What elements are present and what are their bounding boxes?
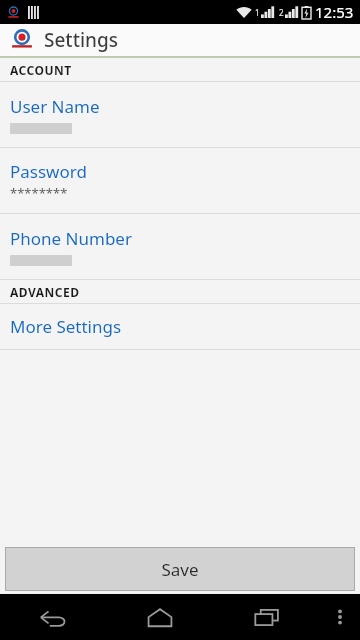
other: App logo [9,27,35,53]
staticText: More Settings [10,315,122,338]
staticText: User Name [10,95,100,118]
staticText: Save [161,558,199,581]
staticText: ACCOUNT [10,62,72,78]
button[interactable]: Back [0,594,106,640]
button[interactable]: User Name [0,82,360,147]
button[interactable]: Home [106,594,213,640]
staticText: Settings [44,27,118,53]
button[interactable]: App logo [0,24,360,56]
button[interactable]: Recent apps [213,594,320,640]
button[interactable]: Password [0,148,360,213]
staticText: ******** [10,184,68,202]
staticText: ADVANCED [10,284,80,300]
staticText: 12:53 [315,2,354,22]
staticText: 2 [279,7,284,18]
button[interactable]: Save [5,547,355,591]
button[interactable]: Phone Number [0,214,360,279]
staticText: Password [10,160,87,183]
staticText: 1 [255,7,260,18]
staticText: Phone Number [10,227,132,250]
button[interactable]: More Settings [0,304,360,349]
button[interactable]: More options [320,594,360,640]
